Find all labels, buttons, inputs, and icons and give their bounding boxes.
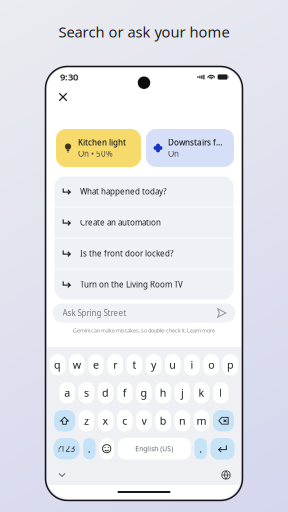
staticText: English (US) xyxy=(135,444,173,453)
button[interactable]: p xyxy=(223,354,238,375)
button[interactable]: Ask Spring Street xyxy=(52,303,235,322)
button[interactable]: Create an automation xyxy=(54,207,233,238)
staticText: Turn on the Living Room TV xyxy=(80,279,183,290)
button[interactable]: v xyxy=(136,410,152,431)
staticText: p xyxy=(227,358,234,372)
staticText: b xyxy=(160,414,167,428)
button[interactable]: h xyxy=(155,382,171,403)
staticText: Kitchen light xyxy=(78,137,126,148)
staticText: What happened today? xyxy=(80,186,166,197)
button[interactable]: Emoji xyxy=(99,438,114,459)
button[interactable]: a xyxy=(59,382,75,403)
button[interactable]: Close xyxy=(54,88,72,106)
button[interactable]: e xyxy=(88,354,104,375)
button[interactable]: r xyxy=(107,354,123,375)
staticText: Is the front door locked? xyxy=(80,248,173,259)
staticText: x xyxy=(103,414,109,428)
staticText: u xyxy=(169,358,176,372)
button[interactable]: Change language xyxy=(216,469,236,481)
staticText: z xyxy=(84,414,89,428)
staticText: Search or ask your home xyxy=(58,22,229,41)
staticText: f xyxy=(123,386,127,400)
staticText: c xyxy=(122,414,127,428)
staticText: 9:30 xyxy=(60,71,78,83)
staticText: . xyxy=(88,442,91,456)
button[interactable]: t xyxy=(127,354,142,375)
button[interactable]: q xyxy=(50,354,65,375)
button[interactable]: Is the front door locked? xyxy=(54,238,233,269)
staticText: r xyxy=(113,358,117,372)
staticText: l xyxy=(219,386,222,400)
button[interactable]: Turn on the Living Room TV xyxy=(54,269,233,300)
button[interactable]: English (US) xyxy=(118,438,191,459)
button[interactable]: What happened today? xyxy=(54,176,233,207)
staticText: o xyxy=(208,358,214,372)
button[interactable]: Hide keyboard xyxy=(52,469,72,481)
button[interactable]: Downstairs fan xyxy=(146,129,234,167)
button[interactable]: u xyxy=(165,354,181,375)
staticText: h xyxy=(160,386,167,400)
staticText: j xyxy=(181,386,184,400)
button[interactable]: s xyxy=(79,382,94,403)
staticText: t xyxy=(132,358,136,372)
staticText: m xyxy=(197,414,207,428)
button[interactable]: d xyxy=(98,382,113,403)
button[interactable]: g xyxy=(136,382,152,403)
staticText: Create an automation xyxy=(80,217,161,228)
staticText: ?123 xyxy=(57,443,75,454)
staticText: On • 50% xyxy=(78,148,113,159)
button[interactable]: i xyxy=(184,354,200,375)
button[interactable]: y xyxy=(146,354,161,375)
staticText: g xyxy=(140,386,147,400)
button[interactable]: x xyxy=(98,410,113,431)
staticText: Gemini can make mistakes, so double-chec… xyxy=(73,327,215,334)
staticText: i xyxy=(190,358,193,372)
staticText: Ask Spring Street xyxy=(62,308,126,318)
button[interactable]: w xyxy=(69,354,85,375)
button[interactable]: Backspace xyxy=(213,410,234,431)
staticText: a xyxy=(64,386,70,400)
staticText: e xyxy=(93,358,99,372)
staticText: q xyxy=(54,358,61,372)
staticText: Downstairs fan xyxy=(168,137,225,148)
button[interactable]: n xyxy=(175,410,190,431)
button[interactable]: o xyxy=(203,354,219,375)
staticText: w xyxy=(73,358,81,372)
button[interactable]: . xyxy=(194,438,207,459)
staticText: y xyxy=(151,358,156,372)
staticText: v xyxy=(141,414,146,428)
staticText: n xyxy=(179,414,186,428)
button[interactable]: j xyxy=(175,382,190,403)
staticText: . xyxy=(199,442,202,456)
button[interactable]: z xyxy=(79,410,94,431)
button[interactable]: k xyxy=(194,382,209,403)
staticText: s xyxy=(84,386,89,400)
button[interactable]: Kitchen light xyxy=(56,129,141,167)
button[interactable]: l xyxy=(213,382,229,403)
button[interactable]: Shift xyxy=(54,410,75,431)
staticText: d xyxy=(102,386,109,400)
button[interactable]: ?123 xyxy=(53,438,79,459)
button[interactable]: Return xyxy=(210,438,234,459)
button[interactable]: f xyxy=(117,382,133,403)
staticText: On xyxy=(168,148,179,159)
button[interactable]: m xyxy=(194,410,209,431)
button[interactable]: b xyxy=(155,410,171,431)
button[interactable]: . xyxy=(83,438,96,459)
staticText: k xyxy=(199,386,205,400)
button[interactable]: c xyxy=(117,410,133,431)
